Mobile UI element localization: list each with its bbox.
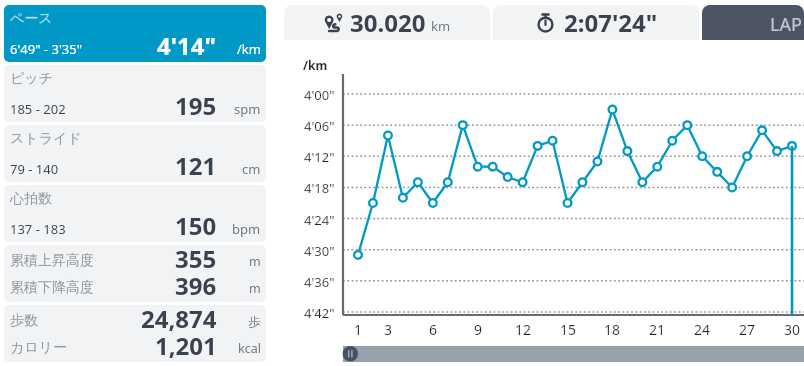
staticText: km — [431, 17, 451, 35]
staticText: 12 — [515, 320, 532, 339]
staticText: 121 — [175, 149, 217, 182]
staticText: 6'49" - 3'35" — [10, 40, 83, 58]
staticText: 4'24" — [304, 211, 335, 229]
staticText: 2:07'24" — [564, 6, 658, 39]
staticText: 4'42" — [304, 304, 335, 322]
staticText: 1 — [354, 320, 363, 339]
staticText: 4'18" — [304, 179, 335, 197]
button[interactable]: Scroll chart — [343, 346, 804, 362]
staticText: 30.020 — [350, 6, 426, 39]
staticText: 3 — [384, 320, 393, 339]
staticText: ペース — [10, 10, 53, 28]
staticText: kcal — [238, 340, 261, 357]
staticText: 歩数 — [10, 312, 38, 330]
staticText: ピッチ — [10, 70, 53, 88]
staticText: 4'36" — [304, 273, 335, 291]
staticText: 4'00" — [304, 86, 335, 104]
staticText: カロリー — [10, 339, 67, 357]
staticText: 歩 — [248, 314, 261, 330]
staticText: /km — [237, 40, 261, 58]
staticText: 30 — [784, 320, 801, 339]
staticText: 150 — [175, 209, 217, 242]
staticText: 4'06" — [304, 117, 335, 135]
staticText: 137 - 183 — [10, 220, 66, 238]
staticText: 24,874 — [141, 305, 217, 335]
staticText: LAP — [770, 12, 802, 37]
button[interactable]: 歩数 — [4, 305, 266, 362]
staticText: 4'14" — [157, 29, 217, 62]
button[interactable]: 心拍数 — [4, 185, 266, 242]
staticText: /km — [303, 57, 328, 73]
staticText: m — [249, 280, 261, 297]
staticText: bpm — [232, 220, 261, 238]
staticText: ストライド — [10, 130, 82, 148]
staticText: 185 - 202 — [10, 100, 66, 118]
button[interactable]: ピッチ — [4, 65, 266, 122]
staticText: 9 — [474, 320, 483, 339]
staticText: 396 — [175, 269, 217, 302]
button[interactable]: 累積上昇高度 — [4, 245, 266, 302]
button[interactable]: LAP — [702, 5, 804, 40]
staticText: 355 — [175, 245, 217, 275]
button[interactable]: ストライド — [4, 125, 266, 182]
staticText: 累積下降高度 — [10, 279, 94, 297]
button[interactable]: 30.020 — [284, 5, 490, 40]
staticText: 21 — [649, 320, 666, 339]
staticText: 4'30" — [304, 242, 335, 260]
button[interactable]: 2:07'24" — [493, 5, 699, 40]
staticText: spm — [234, 100, 261, 118]
staticText: 15 — [560, 320, 577, 339]
staticText: 27 — [739, 320, 756, 339]
staticText: cm — [242, 160, 261, 178]
staticText: 1,201 — [155, 329, 217, 362]
staticText: 195 — [175, 89, 217, 122]
staticText: 79 - 140 — [10, 160, 59, 178]
staticText: 累積上昇高度 — [10, 252, 94, 270]
staticText: 24 — [694, 320, 711, 339]
staticText: 6 — [429, 320, 438, 339]
staticText: 18 — [604, 320, 621, 339]
staticText: 心拍数 — [10, 190, 52, 208]
staticText: m — [249, 253, 261, 270]
staticText: 4'12" — [304, 148, 335, 166]
button[interactable]: ペース — [4, 5, 266, 62]
